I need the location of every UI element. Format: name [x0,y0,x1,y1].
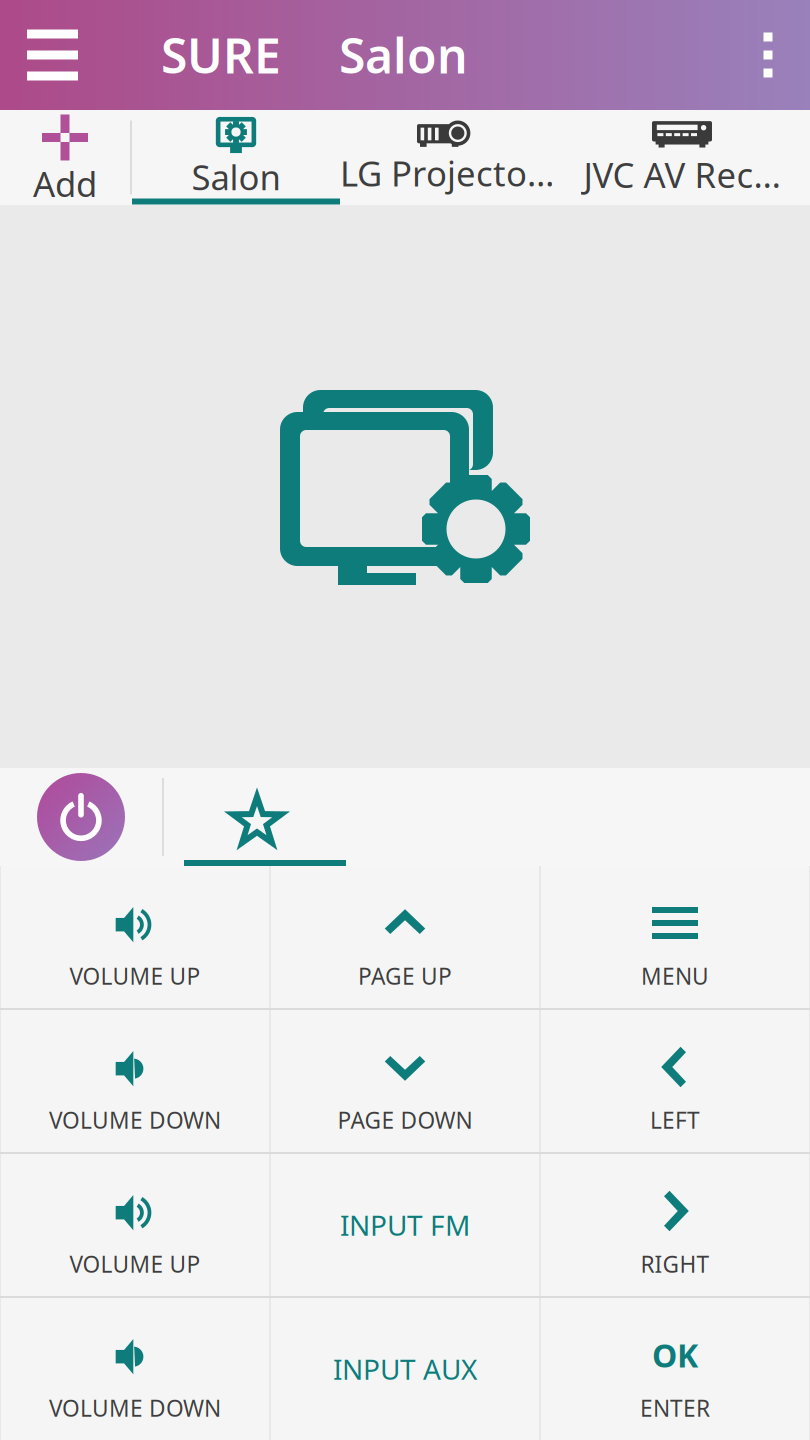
staticText: VOLUME UP [69,961,200,991]
button[interactable]: RIGHT [540,1154,809,1296]
staticText: VOLUME DOWN [49,1393,221,1423]
staticText: Salon [191,154,280,200]
button[interactable]: VOLUME UP [0,866,269,1008]
button[interactable]: INPUT AUX [270,1298,539,1440]
button[interactable]: Favourites [164,768,350,866]
button[interactable]: MENU [540,866,809,1008]
button[interactable]: JVC AV Rec… [554,110,810,204]
button[interactable]: Menu [0,0,105,110]
staticText: LEFT [650,1105,700,1135]
button[interactable]: Add [0,113,130,201]
staticText: JVC AV Rec… [583,151,780,197]
staticText: INPUT FM [340,1206,470,1244]
button[interactable]: VOLUME DOWN [0,1298,269,1440]
button[interactable]: VOLUME UP [0,1154,269,1296]
staticText: OK [652,1334,698,1376]
staticText: LG Projecto… [340,150,554,196]
button[interactable]: More options [726,0,810,110]
button[interactable]: OK [540,1298,809,1440]
button[interactable]: Power [0,768,162,866]
staticText: ENTER [640,1393,710,1423]
button[interactable]: Salon [132,110,340,204]
staticText: PAGE UP [358,961,452,991]
button[interactable]: VOLUME DOWN [0,1010,269,1152]
button[interactable]: PAGE UP [270,866,539,1008]
staticText: PAGE DOWN [337,1105,472,1135]
button[interactable]: INPUT FM [270,1154,539,1296]
button[interactable]: LEFT [540,1010,809,1152]
button[interactable]: LG Projecto… [340,110,554,204]
button[interactable]: PAGE DOWN [270,1010,539,1152]
staticText: INPUT AUX [333,1350,477,1388]
staticText: MENU [641,961,709,991]
staticText: SURE [161,23,281,87]
staticText: Salon [339,23,468,87]
staticText: VOLUME UP [69,1249,200,1279]
staticText: Add [33,160,97,206]
staticText: VOLUME DOWN [49,1105,221,1135]
staticText: RIGHT [640,1249,709,1279]
